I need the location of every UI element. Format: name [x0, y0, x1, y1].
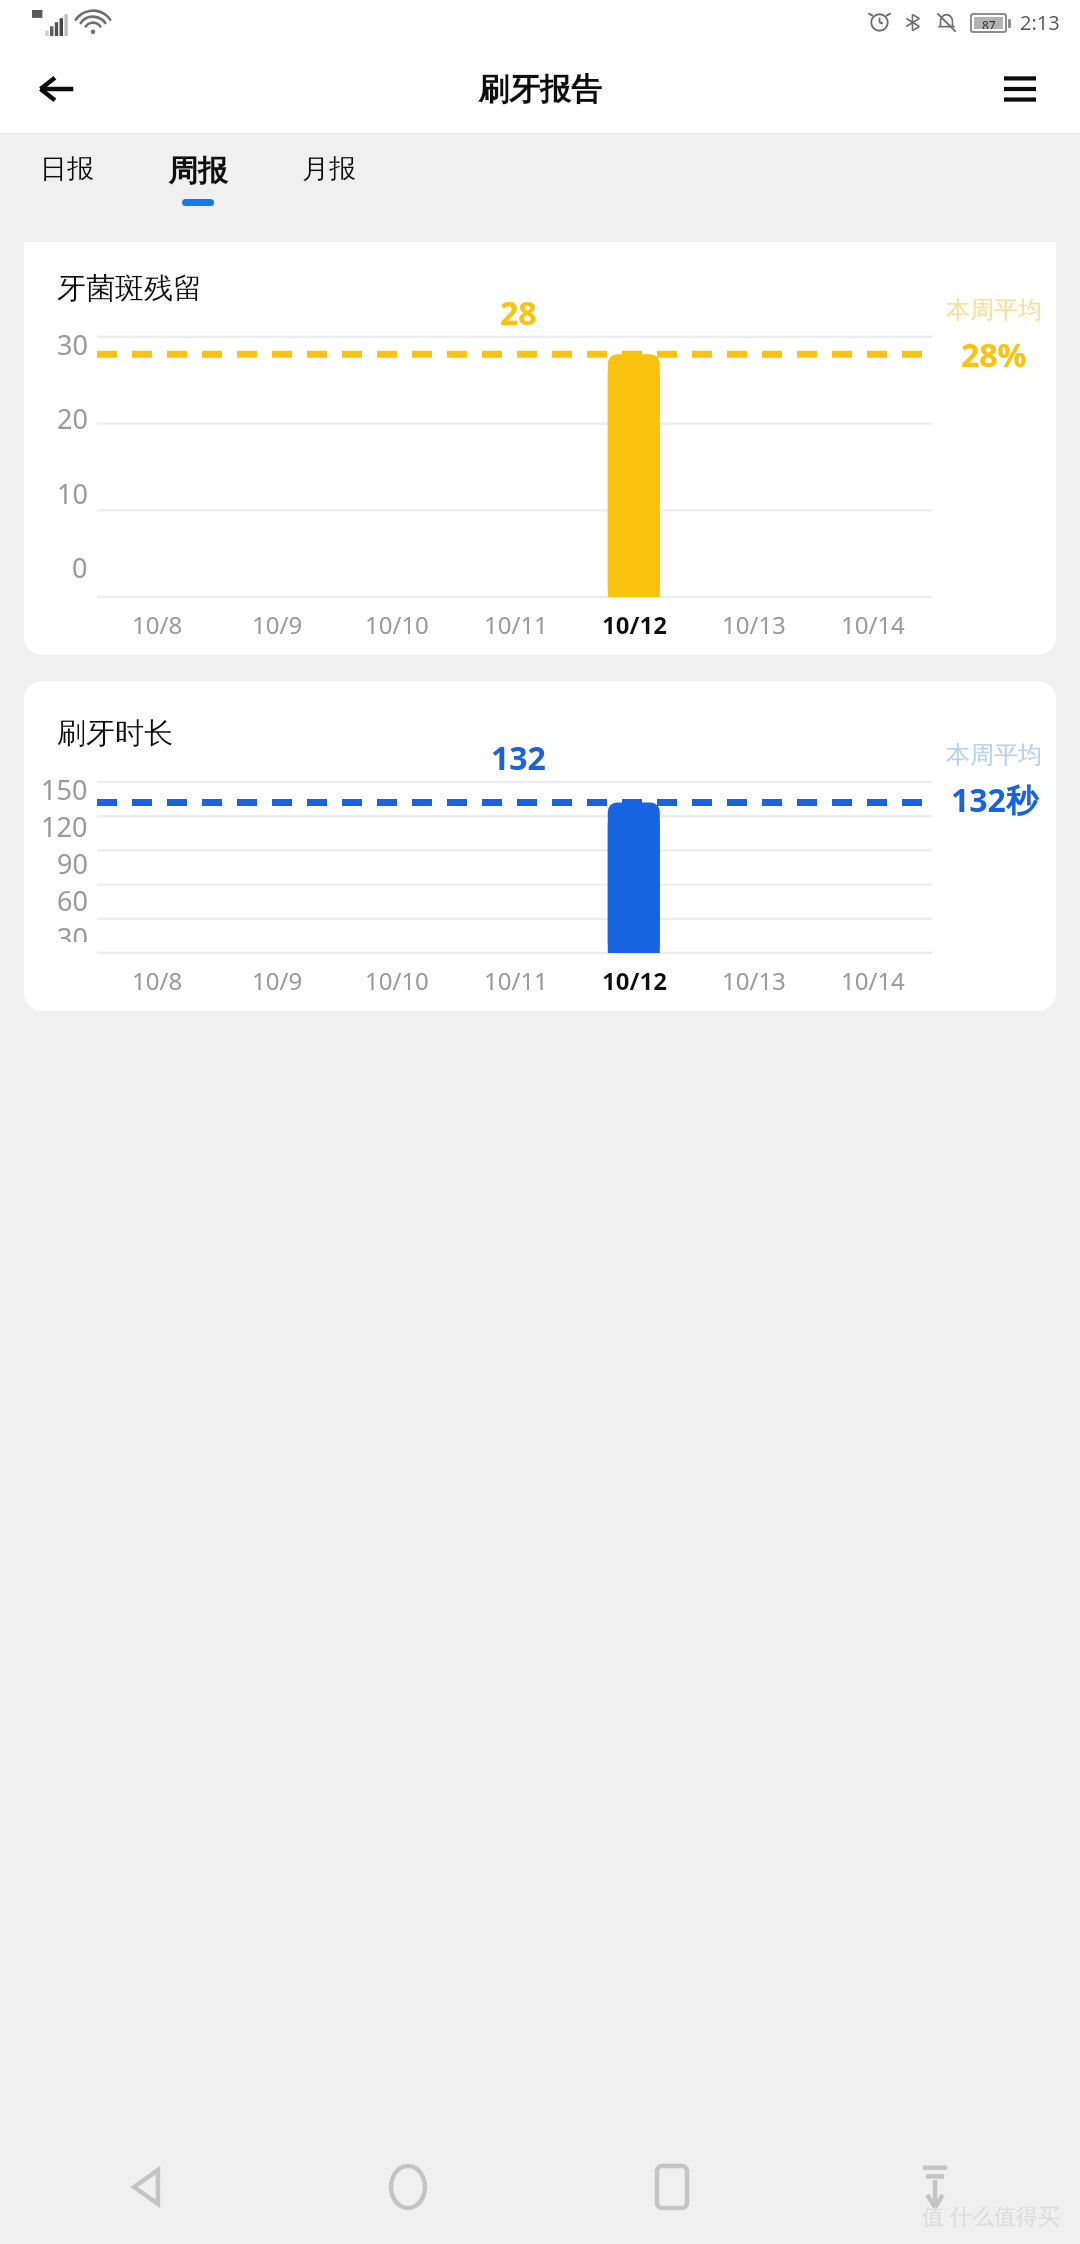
button[interactable]: 日报 — [30, 148, 104, 206]
button[interactable]: Notifications — [890, 2142, 980, 2232]
staticText: 10/9 — [252, 964, 303, 997]
staticText: 10 — [57, 475, 88, 512]
staticText: 刷牙报告 — [478, 70, 602, 109]
staticText: 10/12 — [602, 608, 667, 641]
button[interactable]: Menu — [986, 55, 1054, 123]
staticText: 132秒 — [951, 778, 1038, 822]
staticText: 10/10 — [365, 608, 429, 641]
staticText: 10/10 — [365, 964, 429, 997]
staticText: 28 — [500, 291, 537, 335]
staticText: 值 什么值得买 — [922, 2200, 1060, 2230]
staticText: 10/11 — [484, 608, 548, 641]
button[interactable]: 周报 — [158, 148, 238, 210]
staticText: 10/13 — [722, 608, 786, 641]
staticText: 10/8 — [132, 964, 183, 997]
staticText: 刷牙时长 — [57, 715, 173, 752]
staticText: 周报 — [168, 152, 228, 190]
staticText: 90 — [57, 845, 88, 882]
staticText: 2:13 — [1020, 9, 1060, 36]
staticText: 132 — [491, 736, 546, 780]
staticText: 28% — [961, 333, 1027, 377]
button[interactable]: Home — [363, 2142, 453, 2232]
staticText: 87 — [982, 17, 996, 29]
staticText: 0 — [72, 549, 88, 586]
staticText: 10/12 — [602, 964, 667, 997]
staticText: 日报 — [40, 152, 94, 186]
button[interactable]: 牙菌斑残留 — [24, 242, 1056, 655]
staticText: 150 — [41, 771, 88, 808]
staticText: 20 — [57, 400, 88, 437]
staticText: 月报 — [302, 152, 356, 186]
button[interactable]: Recents — [627, 2142, 717, 2232]
button[interactable]: 月报 — [292, 148, 366, 206]
staticText: 10/14 — [841, 608, 905, 641]
staticText: 本周平均 — [946, 295, 1042, 325]
button[interactable]: Back — [22, 55, 90, 123]
staticText: 10/8 — [132, 608, 183, 641]
button[interactable]: Back — [100, 2142, 190, 2232]
staticText: 10/14 — [841, 964, 905, 997]
staticText: 30 — [57, 919, 88, 942]
staticText: 牙菌斑残留 — [57, 270, 202, 307]
staticText: 10/13 — [722, 964, 786, 997]
staticText: 10/9 — [252, 608, 303, 641]
staticText: 30 — [57, 326, 88, 363]
staticText: 本周平均 — [946, 740, 1042, 770]
staticText: 60 — [57, 882, 88, 919]
staticText: 120 — [41, 808, 88, 845]
button[interactable]: 刷牙时长 — [24, 681, 1056, 1011]
staticText: 10/11 — [484, 964, 548, 997]
